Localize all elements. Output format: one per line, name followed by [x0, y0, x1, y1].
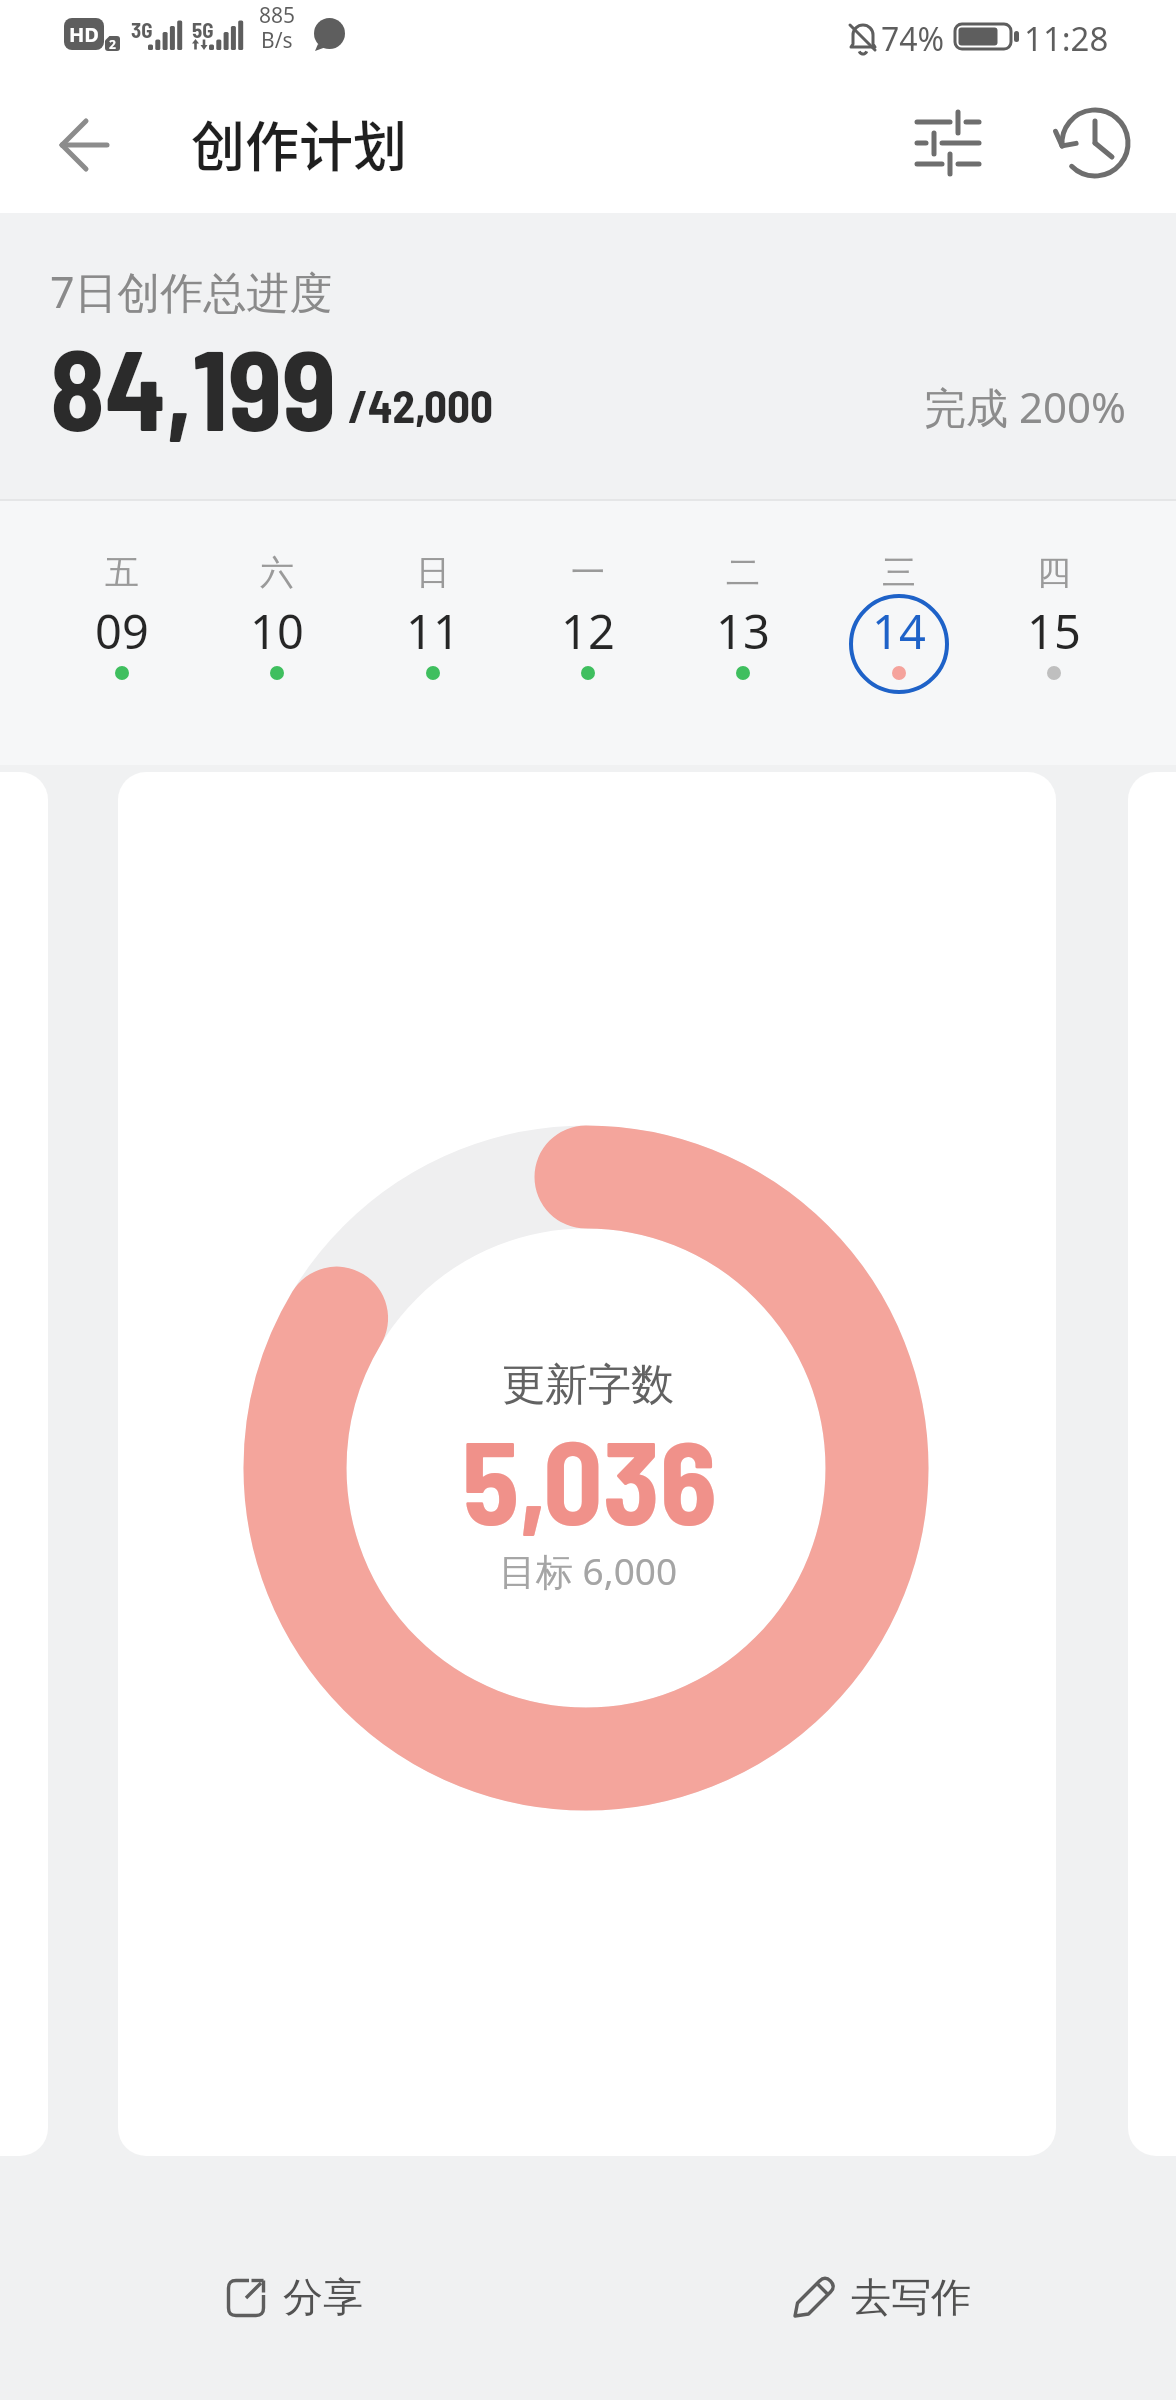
staticText: 2: [109, 36, 116, 51]
button[interactable]: 去写作: [793, 2266, 971, 2328]
staticText: 3G: [131, 17, 153, 42]
staticText: 11: [406, 599, 460, 663]
button[interactable]: [666, 540, 820, 710]
button[interactable]: [45, 540, 199, 710]
staticText: 13: [716, 599, 770, 663]
staticText: 去写作: [851, 2272, 971, 2322]
staticText: 7日创作总进度: [50, 262, 333, 321]
staticText: B/s: [261, 26, 293, 55]
staticText: 09: [95, 599, 149, 663]
staticText: 日: [416, 551, 450, 594]
button[interactable]: [200, 540, 354, 710]
staticText: HD: [69, 21, 99, 48]
staticText: 目标 6,000: [499, 1545, 678, 1596]
staticText: 15: [1027, 599, 1081, 663]
staticText: 更新字数: [502, 1358, 674, 1412]
staticText: /42,000: [348, 378, 494, 432]
staticText: 10: [250, 599, 304, 663]
button[interactable]: [40, 100, 130, 190]
staticText: 四: [1037, 551, 1071, 594]
button[interactable]: [977, 540, 1131, 710]
staticText: 创作计划: [191, 104, 407, 182]
staticText: 二: [726, 551, 760, 594]
staticText: 14: [872, 599, 926, 663]
staticText: 完成 200%: [924, 378, 1126, 435]
staticText: 74%: [881, 17, 945, 61]
staticText: 885: [259, 1, 296, 30]
staticText: 分享: [283, 2272, 363, 2322]
button[interactable]: [1050, 98, 1140, 188]
button[interactable]: [511, 540, 665, 710]
staticText: 一: [571, 551, 605, 594]
staticText: 五: [105, 551, 139, 594]
staticText: 六: [260, 551, 294, 594]
button[interactable]: [356, 540, 510, 710]
button[interactable]: [903, 98, 993, 188]
staticText: 84,199: [50, 319, 337, 453]
staticText: 5G: [192, 17, 214, 42]
button[interactable]: 分享: [227, 2266, 363, 2328]
staticText: 11:28: [1024, 16, 1109, 61]
staticText: 5,036: [462, 1408, 717, 1548]
staticText: 三: [882, 551, 916, 594]
staticText: 12: [561, 599, 615, 663]
button[interactable]: [822, 540, 976, 710]
